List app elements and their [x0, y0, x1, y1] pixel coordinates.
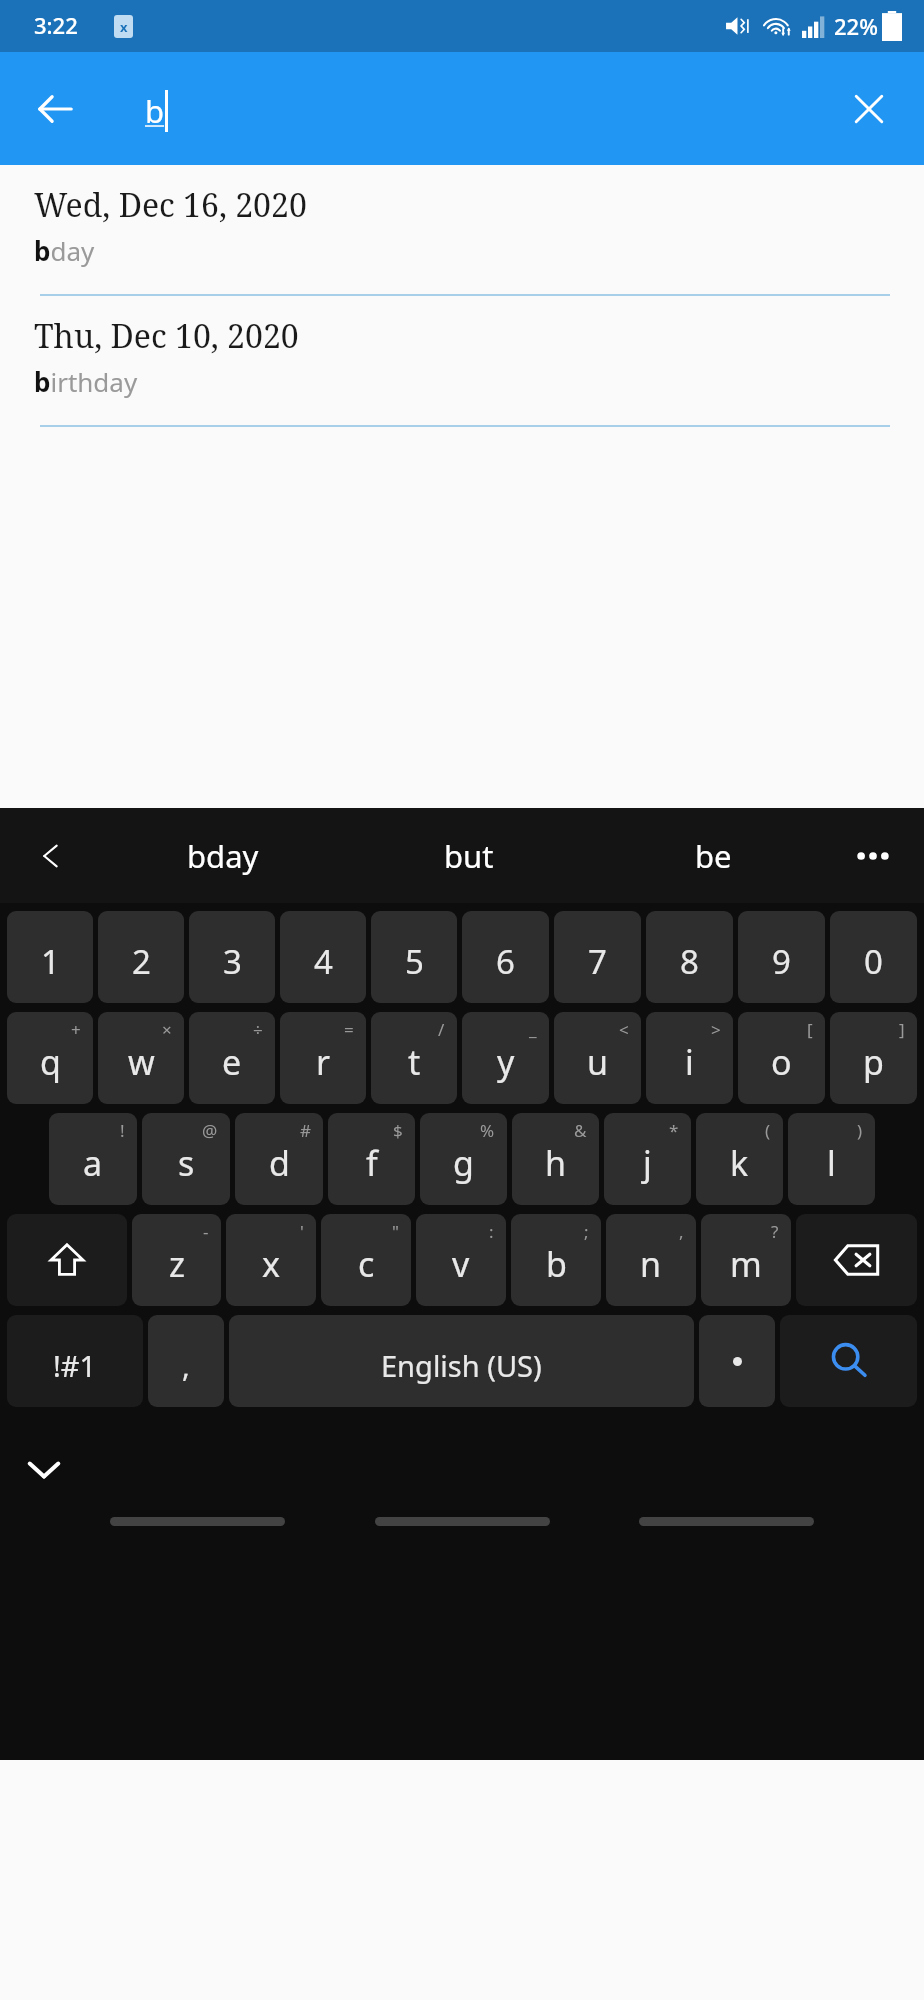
staticText: g: [453, 1140, 474, 1186]
button[interactable]: l: [788, 1113, 875, 1205]
button[interactable]: q: [7, 1012, 93, 1104]
button[interactable]: 9: [738, 911, 825, 1003]
staticText: !: [120, 1119, 125, 1142]
button[interactable]: Clear search: [836, 76, 902, 142]
staticText: &: [574, 1119, 587, 1142]
button[interactable]: x: [226, 1214, 316, 1306]
staticText: ?: [771, 1220, 779, 1243]
button[interactable]: Hide keyboard: [14, 1439, 74, 1499]
staticText: l: [827, 1140, 836, 1186]
button[interactable]: e: [189, 1012, 275, 1104]
staticText: <: [619, 1018, 629, 1041]
staticText: u: [587, 1039, 609, 1085]
button[interactable]: f: [328, 1113, 415, 1205]
button[interactable]: k: [696, 1113, 783, 1205]
button[interactable]: j: [604, 1113, 691, 1205]
button[interactable]: [639, 1517, 814, 1526]
button[interactable]: z: [132, 1214, 221, 1306]
staticText: t: [408, 1039, 421, 1085]
staticText: English (US): [381, 1346, 542, 1385]
button[interactable]: Thu, Dec 10, 2020: [0, 296, 924, 427]
staticText: a: [83, 1140, 103, 1186]
staticText: s: [178, 1140, 195, 1186]
button[interactable]: u: [554, 1012, 641, 1104]
staticText: /: [438, 1018, 445, 1041]
button[interactable]: w: [98, 1012, 184, 1104]
staticText: 7: [588, 939, 607, 984]
staticText: 1: [41, 939, 60, 984]
button[interactable]: c: [321, 1214, 411, 1306]
staticText: ,: [182, 1346, 190, 1385]
button[interactable]: [375, 1517, 550, 1526]
staticText: @: [202, 1119, 218, 1142]
button[interactable]: but: [346, 808, 591, 903]
staticText: x: [262, 1241, 280, 1287]
button[interactable]: 7: [554, 911, 641, 1003]
staticText: 2: [132, 939, 151, 984]
button[interactable]: Previous suggestions: [22, 827, 80, 885]
button[interactable]: Back: [22, 76, 88, 142]
button[interactable]: o: [738, 1012, 825, 1104]
button[interactable]: s: [142, 1113, 230, 1205]
staticText: ]: [899, 1018, 905, 1041]
staticText: d: [269, 1140, 290, 1186]
button[interactable]: g: [420, 1113, 507, 1205]
staticText: 3: [223, 939, 242, 984]
button[interactable]: Search: [780, 1315, 917, 1407]
staticText: *: [669, 1119, 679, 1142]
button[interactable]: bday: [100, 808, 346, 903]
button[interactable]: 3: [189, 911, 275, 1003]
staticText: k: [730, 1140, 749, 1186]
button[interactable]: a: [49, 1113, 137, 1205]
button[interactable]: 4: [280, 911, 366, 1003]
button[interactable]: p: [830, 1012, 917, 1104]
staticText: [: [807, 1018, 813, 1041]
staticText: e: [222, 1039, 242, 1085]
staticText: :: [489, 1220, 494, 1243]
button[interactable]: i: [646, 1012, 733, 1104]
button[interactable]: v: [416, 1214, 506, 1306]
staticText: ×: [162, 1018, 172, 1041]
button[interactable]: English (US): [229, 1315, 694, 1407]
button[interactable]: be: [591, 808, 836, 903]
staticText: (: [765, 1119, 771, 1142]
staticText: p: [863, 1039, 884, 1085]
staticText: x: [120, 18, 128, 36]
staticText: z: [169, 1241, 185, 1287]
button[interactable]: Backspace: [796, 1214, 917, 1306]
button[interactable]: ,: [148, 1315, 224, 1407]
button[interactable]: d: [235, 1113, 323, 1205]
staticText: 4: [314, 939, 333, 984]
staticText: v: [452, 1241, 470, 1287]
staticText: 6: [496, 939, 515, 984]
button[interactable]: [110, 1517, 285, 1526]
button[interactable]: [699, 1315, 775, 1407]
staticText: but: [444, 835, 494, 877]
staticText: 8: [680, 939, 699, 984]
button[interactable]: 1: [7, 911, 93, 1003]
button[interactable]: !#1: [7, 1315, 143, 1407]
button[interactable]: h: [512, 1113, 599, 1205]
button[interactable]: 2: [98, 911, 184, 1003]
button[interactable]: Shift: [7, 1214, 127, 1306]
staticText: Thu, Dec 10, 2020: [34, 314, 299, 358]
staticText: 22%: [834, 11, 878, 41]
button[interactable]: 8: [646, 911, 733, 1003]
staticText: _: [529, 1018, 537, 1041]
button[interactable]: b: [511, 1214, 601, 1306]
staticText: 9: [772, 939, 791, 984]
staticText: i: [685, 1039, 694, 1085]
button[interactable]: t: [371, 1012, 457, 1104]
staticText: w: [128, 1039, 155, 1085]
button[interactable]: Wed, Dec 16, 2020: [0, 165, 924, 296]
button[interactable]: m: [701, 1214, 791, 1306]
staticText: bday: [187, 835, 259, 877]
button[interactable]: More suggestions: [842, 825, 904, 887]
button[interactable]: 0: [830, 911, 917, 1003]
button[interactable]: r: [280, 1012, 366, 1104]
button[interactable]: n: [606, 1214, 696, 1306]
button[interactable]: 6: [462, 911, 549, 1003]
staticText: bday: [34, 233, 95, 268]
button[interactable]: y: [462, 1012, 549, 1104]
button[interactable]: 5: [371, 911, 457, 1003]
